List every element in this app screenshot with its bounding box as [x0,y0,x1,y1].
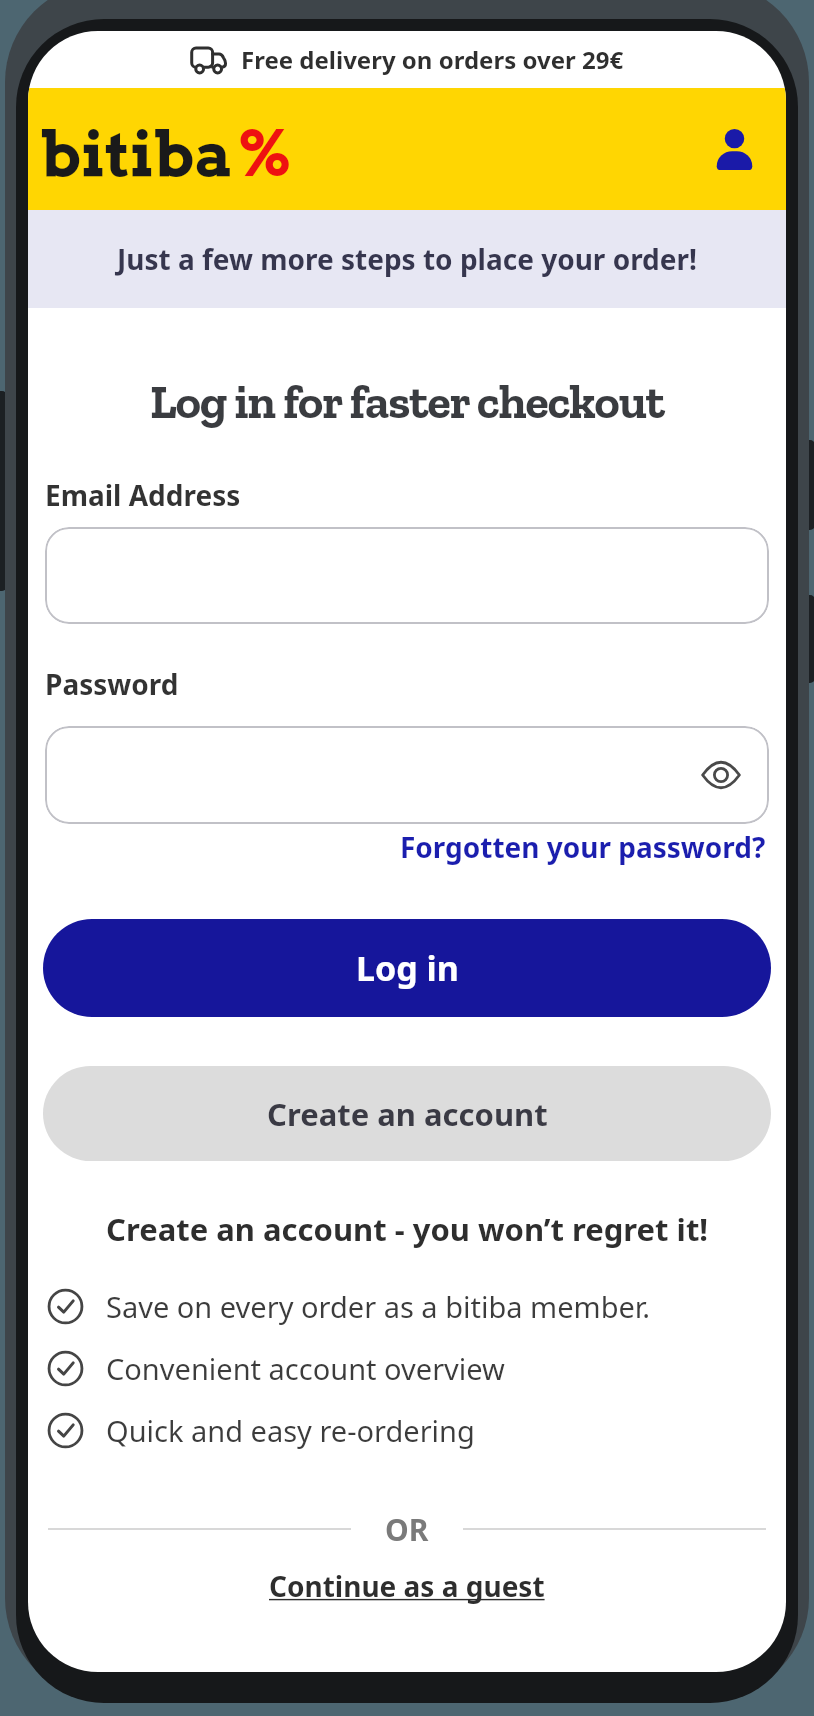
button[interactable] [716,129,753,170]
button[interactable]: Forgotten your password? [400,828,766,866]
button[interactable] [45,726,769,824]
staticText: Free delivery on orders over 29€ [241,43,624,76]
button[interactable]: Create an account [43,1066,771,1161]
staticText: Password [45,665,179,703]
button[interactable]: Continue as a guest [269,1567,545,1605]
staticText: % [234,115,291,191]
staticText: Create an account [267,1093,548,1135]
staticText: Quick and easy re-ordering [106,1411,475,1450]
staticText: OR [385,1509,429,1550]
button[interactable]: Log in [43,919,771,1017]
staticText: Just a few more steps to place your orde… [117,240,697,278]
button[interactable] [45,527,769,624]
staticText: Create an account - you won’t regret it! [106,1208,709,1250]
staticText: Log in for faster checkout [150,373,664,431]
staticText: Save on every order as a bitiba member. [106,1287,650,1326]
staticText: bitiba [41,115,234,191]
staticText: Email Address [45,476,241,514]
staticText: Convenient account overview [106,1349,505,1388]
staticText: Log in [356,945,459,991]
